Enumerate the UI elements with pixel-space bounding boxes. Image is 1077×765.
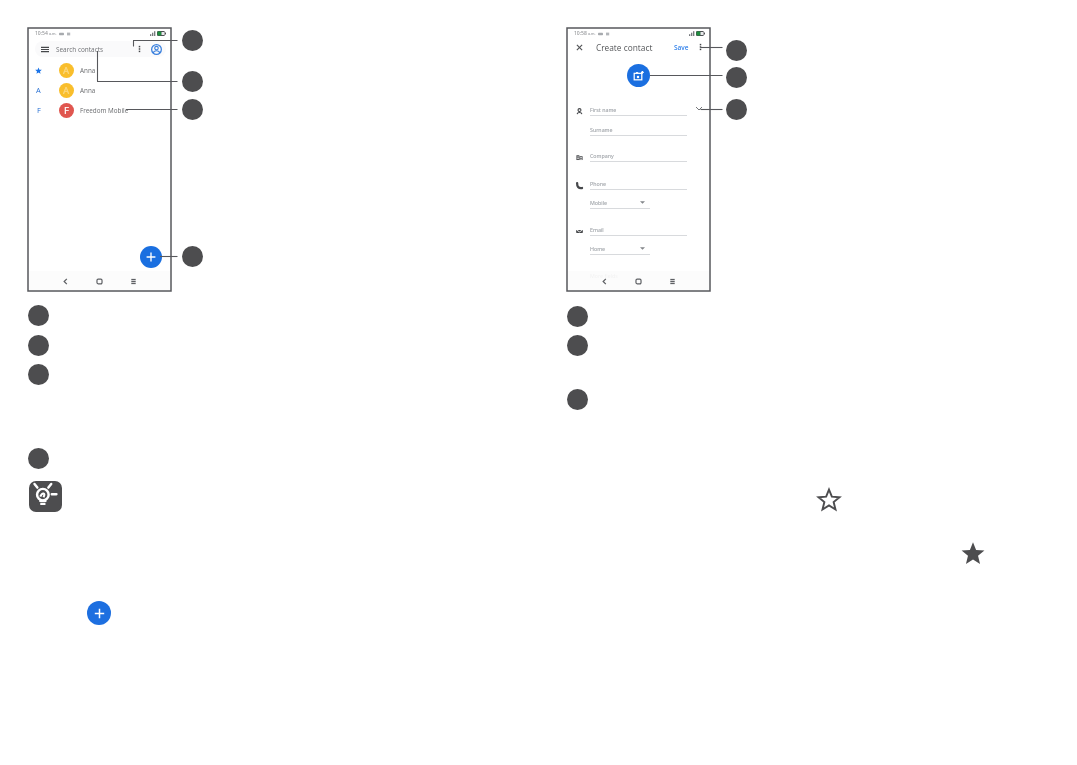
button[interactable]: Tip [29, 481, 62, 512]
button[interactable]: Company [568, 153, 709, 166]
button[interactable]: Home [568, 246, 709, 259]
staticText: F [37, 105, 41, 115]
staticText: Home [590, 245, 606, 252]
button[interactable]: Back [599, 276, 610, 287]
staticText: A [63, 84, 70, 97]
button[interactable]: First name [568, 107, 709, 120]
button[interactable]: F [29, 100, 170, 120]
staticText: Email [590, 226, 604, 233]
button[interactable]: Recents [667, 276, 678, 287]
button[interactable]: A [29, 80, 170, 100]
button[interactable]: Back [60, 276, 71, 287]
staticText: a.m. [588, 31, 596, 36]
staticText: Create contact [596, 42, 653, 53]
button[interactable]: Recents [128, 276, 139, 287]
staticText: 10:58 [574, 30, 587, 37]
staticText: A [36, 85, 41, 95]
staticText: Phone [590, 180, 606, 187]
staticText: Company [590, 152, 614, 159]
button[interactable]: Search contacts [35, 41, 166, 57]
button[interactable]: Email [568, 227, 709, 240]
button[interactable]: Add photo [627, 64, 650, 87]
button[interactable]: Add [87, 601, 111, 625]
button[interactable]: Home [633, 276, 644, 287]
staticText: a.m. [49, 31, 57, 36]
staticText: F [64, 104, 69, 117]
button[interactable]: Close [575, 43, 584, 52]
staticText: Mobile [590, 199, 607, 206]
staticText: First name [590, 106, 617, 113]
staticText: Anna [80, 66, 96, 75]
staticText: Search contacts [56, 45, 104, 54]
staticText: A [63, 64, 70, 77]
button[interactable]: Mobile [568, 200, 709, 213]
button[interactable]: More options [697, 41, 704, 53]
staticText: More fields [590, 272, 618, 279]
staticText: Save [674, 43, 689, 52]
button[interactable]: Save [673, 43, 690, 52]
button[interactable]: Account [151, 44, 162, 55]
button[interactable]: Create contact [140, 246, 162, 268]
button[interactable]: Surname [568, 127, 709, 140]
button[interactable]: Phone [568, 181, 709, 194]
staticText: Freedom Mobile [80, 106, 129, 115]
button[interactable]: More options [136, 43, 143, 55]
staticText: 10:54 [35, 30, 48, 37]
button[interactable]: A [29, 60, 170, 80]
staticText: Anna [80, 86, 96, 95]
button[interactable]: Home [94, 276, 105, 287]
staticText: Surname [590, 126, 613, 133]
